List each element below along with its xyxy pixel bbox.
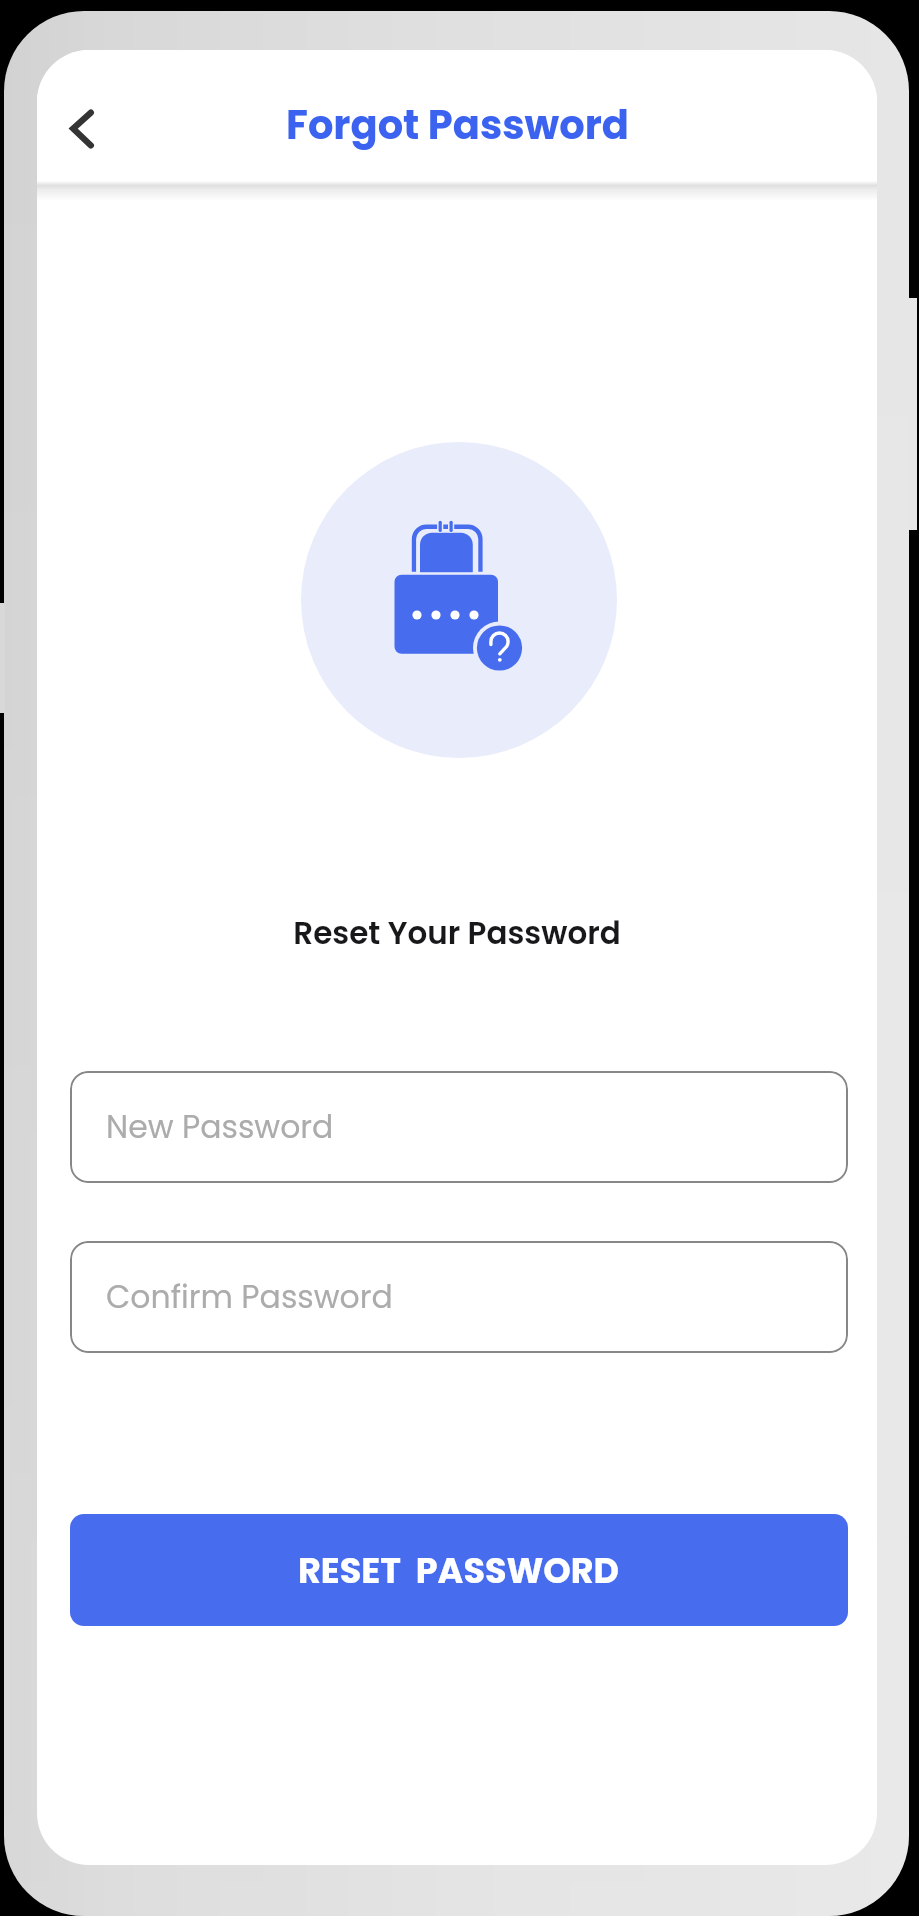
staticText: New Password [106, 1105, 334, 1149]
button[interactable]: RESET PASSWORD [70, 1514, 848, 1626]
staticText: RESET PASSWORD [298, 1546, 620, 1595]
button[interactable]: Confirm Password [70, 1241, 848, 1353]
staticText: Forgot Password [286, 97, 629, 153]
button[interactable]: Back [45, 92, 119, 166]
button[interactable]: New Password [70, 1071, 848, 1183]
staticText: Confirm Password [106, 1275, 393, 1319]
staticText: Reset Your Password [37, 911, 877, 954]
